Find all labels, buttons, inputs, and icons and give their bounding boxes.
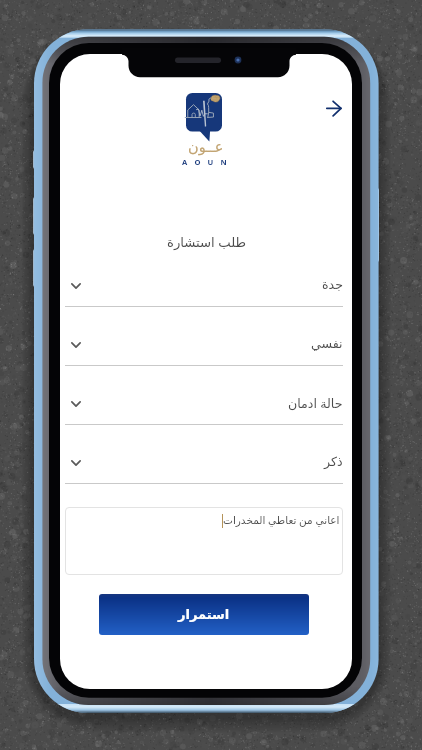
button[interactable]: Next (315, 93, 352, 131)
button[interactable]: اعاني من تعاطي المخدرات (65, 507, 343, 575)
staticText: عــون (188, 139, 224, 156)
staticText: حالة ادمان (288, 395, 343, 412)
staticText: استمرار (178, 607, 230, 622)
button[interactable]: استمرار (99, 594, 309, 635)
button[interactable]: نفسي (65, 307, 343, 366)
staticText: اعاني من تعاطي المخدرات (223, 513, 340, 527)
staticText: نفسي (311, 336, 343, 351)
staticText: طلب استشارة (167, 233, 246, 251)
button[interactable]: ذكر (65, 425, 343, 484)
staticText: A O U N (182, 157, 230, 167)
button[interactable]: حالة ادمان (65, 366, 343, 425)
button[interactable]: جدة (65, 248, 343, 307)
staticText: جدة (322, 277, 343, 292)
staticText: ذكر (324, 454, 343, 469)
